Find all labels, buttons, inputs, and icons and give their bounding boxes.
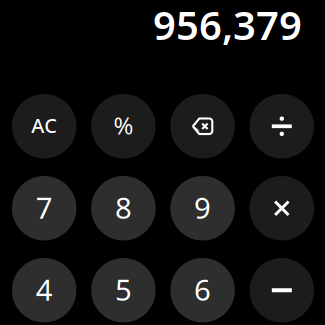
button[interactable]: Divide xyxy=(250,94,314,158)
staticText: 4 xyxy=(36,270,53,309)
button[interactable]: 7 xyxy=(12,176,76,240)
button[interactable]: Delete xyxy=(170,94,235,158)
button[interactable]: 5 xyxy=(91,258,156,322)
staticText: 7 xyxy=(36,188,53,227)
button[interactable]: 4 xyxy=(12,258,76,322)
staticText: % xyxy=(113,109,133,141)
staticText: 9 xyxy=(194,188,211,227)
button[interactable]: 9 xyxy=(170,176,235,240)
button[interactable]: Multiply xyxy=(250,176,314,240)
button[interactable]: Minus xyxy=(250,258,314,322)
button[interactable]: % xyxy=(91,94,156,158)
staticText: 6 xyxy=(194,270,211,309)
staticText: 8 xyxy=(115,188,132,227)
staticText: 956,379 xyxy=(153,0,302,51)
button[interactable]: 8 xyxy=(91,176,156,240)
staticText: 5 xyxy=(115,270,132,309)
button[interactable]: AC xyxy=(12,94,76,158)
staticText: AC xyxy=(31,112,57,139)
button[interactable]: 6 xyxy=(170,258,235,322)
